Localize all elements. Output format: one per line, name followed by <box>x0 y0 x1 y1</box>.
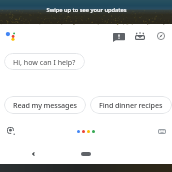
button[interactable]: Explore <box>153 28 169 44</box>
button[interactable]: Keyboard <box>154 123 170 139</box>
staticText: Read my messages <box>13 100 77 110</box>
button[interactable]: Google Lens <box>3 123 19 139</box>
button[interactable]: Back <box>27 148 39 160</box>
button[interactable]: Hi, how can I help? <box>4 53 85 70</box>
button[interactable]: Home <box>74 148 98 160</box>
button[interactable]: Conversation history <box>109 29 128 45</box>
button[interactable]: Read my messages <box>4 96 86 114</box>
staticText: Hi, how can I help? <box>13 57 76 67</box>
button[interactable]: Find dinner recipes <box>90 96 172 114</box>
staticText: Swipe up to see your updates <box>46 6 127 14</box>
staticText: Find dinner recipes <box>99 100 163 110</box>
button[interactable]: Talk to Assistant <box>73 125 99 137</box>
button[interactable]: Shortcuts <box>132 28 148 44</box>
button[interactable]: Google Assistant <box>4 30 17 43</box>
